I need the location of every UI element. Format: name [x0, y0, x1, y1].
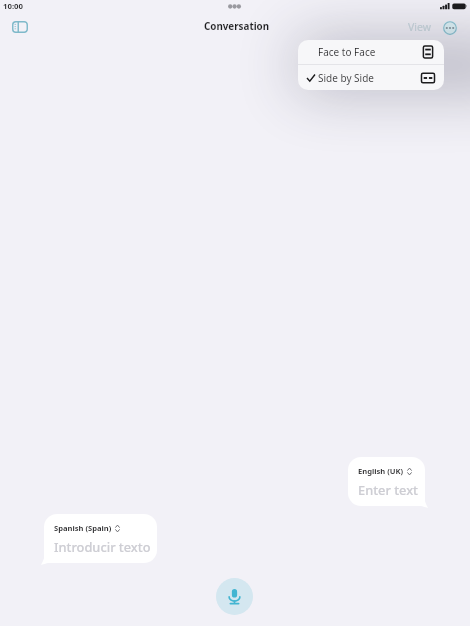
staticText: Introducir texto: [54, 538, 151, 555]
button[interactable]: English (UK): [348, 457, 425, 506]
staticText: Side by Side: [318, 71, 374, 85]
staticText: Conversation: [204, 20, 270, 33]
staticText: English (UK): [358, 466, 404, 476]
staticText: Face to Face: [318, 45, 376, 59]
staticText: Spanish (Spain): [54, 523, 112, 533]
staticText: Enter text: [358, 481, 418, 498]
button[interactable]: Face to Face: [298, 40, 444, 64]
button[interactable]: Record voice: [216, 578, 253, 615]
button[interactable]: Toggle sidebar: [7, 14, 33, 40]
button[interactable]: Spanish (Spain): [44, 514, 157, 563]
button[interactable]: More options: [438, 16, 462, 40]
button[interactable]: View: [405, 18, 434, 36]
staticText: 10:00: [3, 1, 24, 12]
button[interactable]: Side by Side: [298, 65, 444, 90]
